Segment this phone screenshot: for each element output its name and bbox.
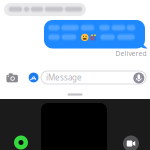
staticText: iMessage: [46, 72, 82, 83]
button[interactable]: App Store: [29, 73, 38, 82]
staticText: Delivered: [115, 49, 146, 58]
button[interactable]: Take photo: [6, 73, 18, 82]
button[interactable]: Record audio message: [133, 72, 144, 83]
button[interactable]: Recording in progress: [14, 135, 28, 149]
button[interactable]: Turn camera on or off: [123, 135, 139, 150]
button[interactable]: iMessage: [41, 71, 146, 84]
